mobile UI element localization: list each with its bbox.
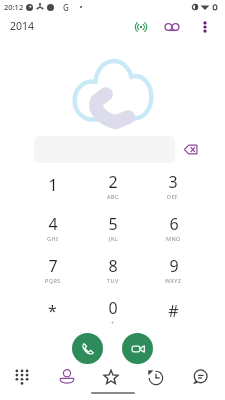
staticText: 5	[108, 213, 118, 235]
staticText: TUV	[107, 277, 119, 284]
button[interactable]: 9	[143, 250, 203, 292]
button[interactable]: *	[22, 292, 83, 334]
button[interactable]: Dialpad	[6, 365, 38, 389]
staticText: 2	[108, 171, 118, 193]
staticText: G	[63, 2, 69, 13]
staticText: 4	[48, 213, 58, 235]
button[interactable]: 0	[83, 292, 143, 334]
button[interactable]: 8	[83, 250, 143, 292]
button[interactable]: #	[143, 292, 203, 334]
button[interactable]: 1	[22, 166, 83, 208]
staticText: 9	[169, 255, 179, 277]
button[interactable]: 6	[143, 208, 203, 250]
staticText: JKL	[109, 235, 118, 242]
button[interactable]: Contacts	[51, 365, 83, 389]
button[interactable]: 7	[22, 250, 83, 292]
button[interactable]: RTT call	[127, 13, 154, 40]
staticText: *	[48, 300, 57, 322]
button[interactable]: Recents	[139, 365, 171, 389]
button[interactable]: Backspace	[177, 135, 205, 163]
staticText: 2014	[10, 19, 35, 33]
staticText: ABC	[107, 193, 119, 200]
staticText: MNO	[166, 235, 181, 242]
button[interactable]: Voicemail	[158, 13, 185, 40]
staticText: 8	[108, 255, 118, 277]
staticText: 1	[48, 174, 58, 196]
staticText: DEF	[167, 193, 179, 200]
button[interactable]: 3	[143, 166, 203, 208]
button[interactable]: Video call	[122, 333, 153, 364]
staticText: 20:12	[4, 2, 24, 12]
button[interactable]: 5	[83, 208, 143, 250]
staticText: 3	[168, 171, 178, 193]
staticText: #	[168, 300, 179, 322]
button[interactable]: More options	[191, 13, 218, 40]
staticText: +	[111, 319, 115, 326]
button[interactable]: Messages	[184, 365, 216, 389]
staticText: PQRS	[45, 277, 61, 284]
staticText: 7	[48, 255, 58, 277]
staticText: 0	[108, 297, 118, 319]
button[interactable]: Call	[72, 333, 103, 364]
staticText: 6	[169, 213, 179, 235]
button[interactable]: Favorites	[95, 365, 127, 389]
button[interactable]: 2	[83, 166, 143, 208]
button[interactable]: 4	[22, 208, 83, 250]
staticText: WXYZ	[165, 277, 182, 284]
staticText: GHI	[47, 235, 59, 242]
